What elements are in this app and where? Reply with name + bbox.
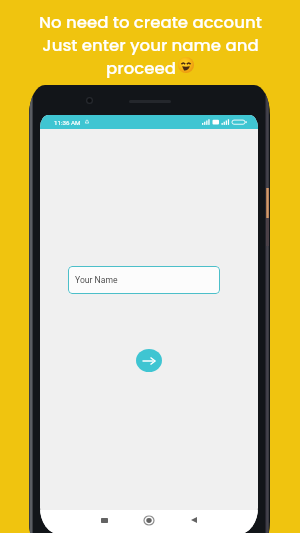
button[interactable]: Back (184, 510, 204, 530)
staticText: Just enter your name and (42, 34, 259, 57)
button[interactable]: Your Name (68, 266, 220, 294)
staticText: No need to create account (39, 11, 262, 34)
staticText: proceed (106, 57, 176, 80)
button[interactable]: Home (139, 510, 159, 530)
button[interactable]: Recents (94, 510, 114, 530)
button[interactable]: Proceed (136, 349, 162, 372)
staticText: 11:36 AM (54, 119, 81, 126)
staticText: Your Name (75, 275, 118, 285)
